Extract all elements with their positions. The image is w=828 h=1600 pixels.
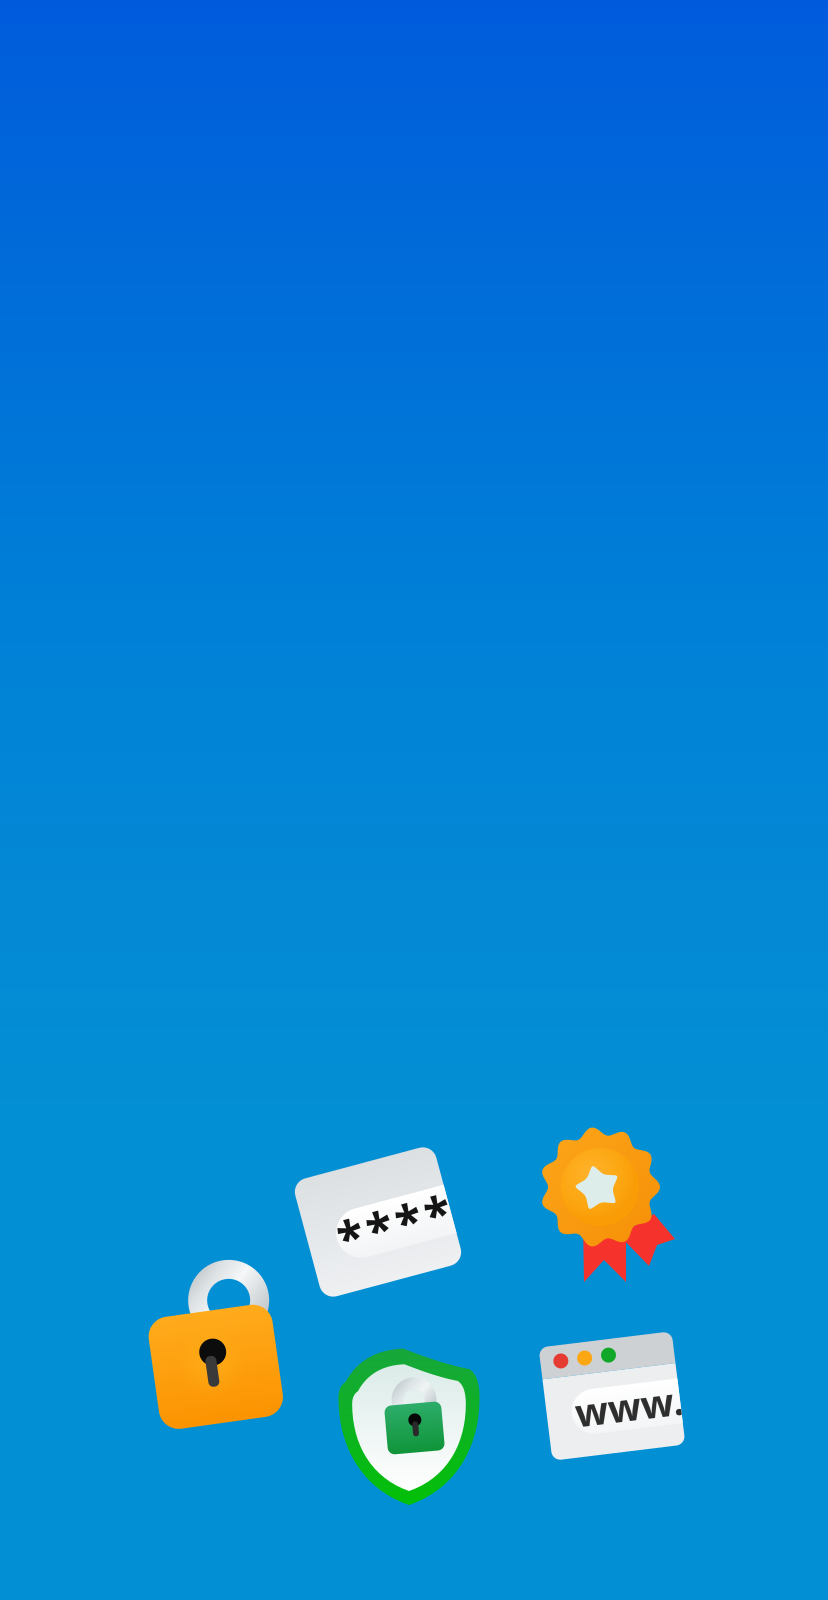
staticText: * [455,1197,481,1261]
staticText: * [335,1197,361,1261]
staticText: * [395,1197,421,1261]
staticText: * [425,1197,451,1261]
staticText: www. [573,1382,682,1434]
staticText: * [365,1197,391,1261]
